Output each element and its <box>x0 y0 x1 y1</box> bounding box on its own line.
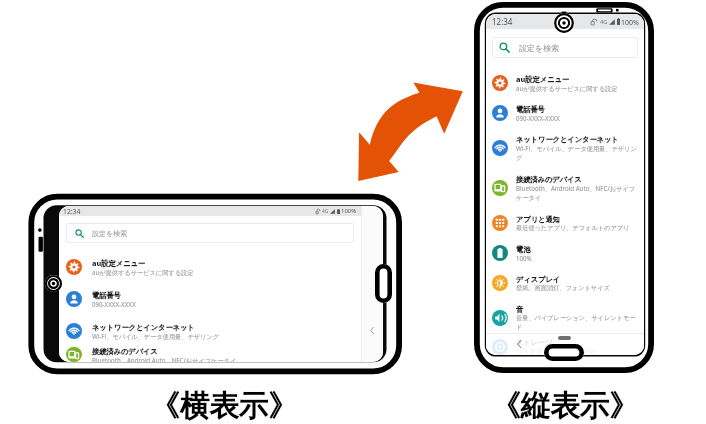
button[interactable]: アプリと通知 <box>486 208 644 238</box>
staticText: 100% <box>621 17 639 27</box>
staticText: 接続済みのデバイス <box>516 175 582 184</box>
staticText: 12:34 <box>492 16 513 27</box>
button[interactable]: ディスプレイ <box>486 268 644 298</box>
staticText: 50% 使用 - 空き容量 12.4 GB <box>516 347 597 355</box>
staticText: 100% <box>341 207 357 215</box>
staticText: ネットワークとインターネット <box>516 135 619 144</box>
other: Back <box>517 340 522 348</box>
staticText: 壁紙、画面消灯、フォントサイズ <box>516 284 610 292</box>
button[interactable]: 接続済みのデバイス <box>486 168 644 208</box>
staticText: ストレージ <box>516 338 553 347</box>
staticText: 設定を検索 <box>519 43 560 53</box>
button[interactable]: ストレージ <box>486 338 644 355</box>
staticText: アプリと通知 <box>516 215 560 224</box>
staticText: 設定を検索 <box>92 229 128 238</box>
button[interactable]: au設定メニュー <box>59 251 361 283</box>
staticText: 100% <box>516 254 532 262</box>
staticText: 4G <box>322 208 329 215</box>
staticText: ネットワークとインターネット <box>92 323 195 332</box>
staticText: auが提供するサービスに関する設定 <box>92 268 194 276</box>
staticText: au設定メニュー <box>516 74 569 84</box>
staticText: 音量、バイブレーション、サイレントモード <box>516 314 638 331</box>
button[interactable]: 電池 <box>486 238 644 268</box>
staticText: 《横表示》 <box>150 388 298 424</box>
staticText: Wi-Fi、モバイル、データ使用量、テザリング <box>516 144 638 162</box>
button[interactable]: 設定を検索 <box>66 223 354 243</box>
staticText: 090-XXXX-XXXX <box>516 114 560 122</box>
staticText: au設定メニュー <box>92 258 145 268</box>
staticText: 《縦表示》 <box>491 388 639 424</box>
staticText: Wi-Fi、モバイル、データ使用量、テザリング <box>92 332 220 340</box>
other: Front camera <box>45 275 62 292</box>
button[interactable]: ネットワークとインターネット <box>59 315 361 347</box>
staticText: 電話番号 <box>516 105 545 114</box>
other: Back <box>370 327 374 334</box>
staticText: 4G <box>600 18 608 26</box>
other: Home <box>558 336 571 340</box>
staticText: 電池 <box>516 245 531 254</box>
staticText: 電話番号 <box>92 291 121 300</box>
button[interactable]: 接続済みのデバイス <box>59 347 361 362</box>
staticText: 最近使ったアプリ、デフォルトのアプリ <box>516 224 630 232</box>
staticText: 接続済みのデバイス <box>92 347 158 356</box>
button[interactable]: ネットワークとインターネット <box>486 128 644 168</box>
button[interactable]: 電話番号 <box>59 283 361 315</box>
staticText: ディスプレイ <box>516 275 561 284</box>
staticText: Bluetooth、Android Auto、NFC/おサイフケータイ <box>92 356 237 362</box>
button[interactable]: 音 <box>486 298 644 338</box>
staticText: 090-XXXX-XXXX <box>92 300 136 308</box>
staticText: Bluetooth、Android Auto、NFC/おサイフケータイ <box>516 184 638 202</box>
other: Front camera <box>554 13 574 33</box>
staticText: 音 <box>516 305 524 314</box>
button[interactable]: 電話番号 <box>486 98 644 128</box>
button[interactable]: au設定メニュー <box>486 68 644 98</box>
button[interactable]: 設定を検索 <box>492 37 638 58</box>
staticText: 12:34 <box>63 207 81 216</box>
staticText: auが提供するサービスに関する設定 <box>516 84 618 92</box>
